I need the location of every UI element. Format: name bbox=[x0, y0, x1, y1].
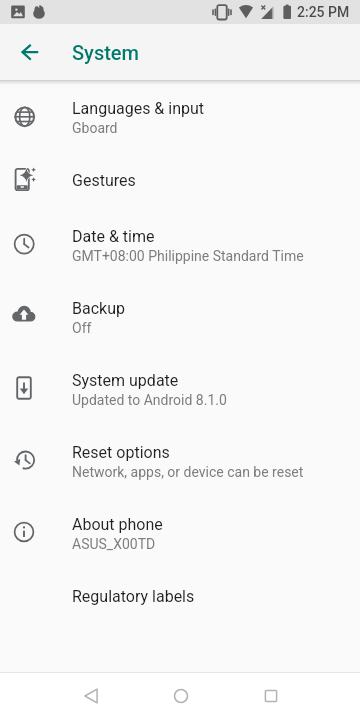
button[interactable]: Recents bbox=[226, 672, 316, 719]
button[interactable]: Backup bbox=[0, 280, 360, 352]
button[interactable]: Back bbox=[46, 672, 136, 719]
button[interactable]: Home bbox=[136, 672, 226, 719]
button[interactable]: System update bbox=[0, 352, 360, 424]
staticText: Gboard bbox=[72, 120, 118, 136]
button[interactable]: Gestures bbox=[0, 152, 360, 208]
button[interactable]: Back bbox=[5, 28, 53, 76]
staticText: Date & time bbox=[72, 227, 155, 246]
staticText: Backup bbox=[72, 299, 125, 318]
staticText: System update bbox=[72, 371, 179, 390]
staticText: Reset options bbox=[72, 443, 170, 462]
staticText: Network, apps, or device can be reset bbox=[72, 464, 304, 480]
button[interactable]: About phone bbox=[0, 496, 360, 568]
staticText: Languages & input bbox=[72, 99, 205, 118]
staticText: About phone bbox=[72, 515, 163, 534]
staticText: Off bbox=[72, 320, 92, 336]
staticText: Updated to Android 8.1.0 bbox=[72, 392, 227, 408]
button[interactable]: Regulatory labels bbox=[0, 568, 360, 624]
button[interactable]: Languages & input bbox=[0, 80, 360, 152]
staticText: Regulatory labels bbox=[72, 587, 195, 606]
button[interactable]: Reset options bbox=[0, 424, 360, 496]
staticText: GMT+08:00 Philippine Standard Time bbox=[72, 248, 304, 264]
staticText: Gestures bbox=[72, 171, 136, 190]
staticText: System bbox=[72, 41, 139, 64]
staticText: ASUS_X00TD bbox=[72, 536, 156, 552]
button[interactable]: Date & time bbox=[0, 208, 360, 280]
staticText: 2:25 PM bbox=[297, 4, 350, 20]
